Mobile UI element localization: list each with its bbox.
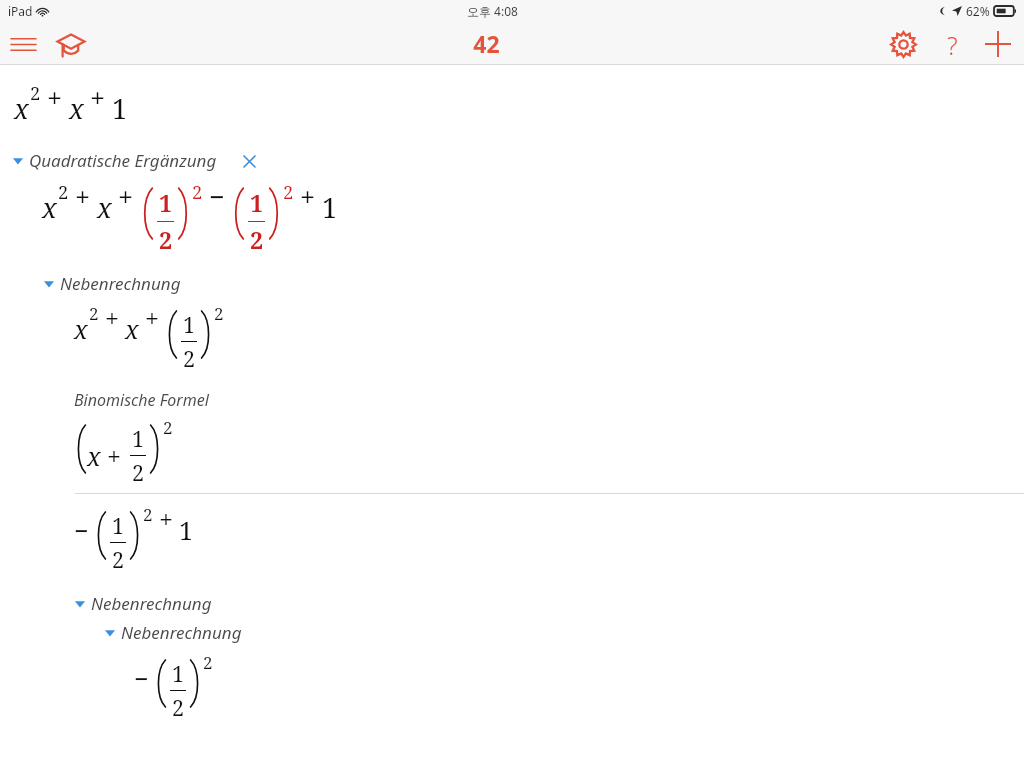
staticText: 62% <box>966 3 990 19</box>
staticText: 2 <box>192 179 203 204</box>
staticText: x <box>125 312 139 346</box>
staticText: 1 <box>183 310 196 339</box>
staticText: 1 <box>250 187 264 219</box>
staticText: + <box>300 178 316 215</box>
button[interactable]: Add <box>982 28 1014 60</box>
staticText: Nebenrechnung <box>91 592 212 615</box>
staticText: 1 <box>322 189 338 226</box>
staticText: 1 <box>172 659 185 688</box>
staticText: 1 <box>179 513 193 547</box>
staticText: 2 <box>159 224 173 256</box>
staticText: x <box>42 189 57 226</box>
staticText: 1 <box>112 90 128 127</box>
staticText: + <box>107 439 121 473</box>
staticText: Nebenrechnung <box>121 621 242 644</box>
staticText: 2 <box>203 651 213 674</box>
staticText: 42 <box>473 28 500 59</box>
staticText: + <box>145 301 159 335</box>
staticText: Nebenrechnung <box>60 272 181 295</box>
button[interactable]: Close step <box>239 151 259 171</box>
staticText: − <box>74 513 89 547</box>
button[interactable]: − <box>74 502 1024 574</box>
staticText: Quadratische Ergänzung <box>29 149 217 172</box>
button[interactable]: x <box>74 301 1024 373</box>
button[interactable]: Nebenrechnung <box>74 592 1024 615</box>
staticText: + <box>90 79 106 116</box>
staticText: 2 <box>143 503 153 526</box>
staticText: 1 <box>112 511 125 540</box>
staticText: 2 <box>58 179 69 204</box>
staticText: 2 <box>132 458 145 487</box>
button[interactable]: Tutorials <box>54 27 88 61</box>
staticText: ? <box>947 28 958 60</box>
button[interactable]: x <box>74 415 1024 487</box>
staticText: 2 <box>163 416 173 439</box>
button[interactable]: x <box>42 178 1024 256</box>
button[interactable]: Help <box>936 28 968 60</box>
staticText: − <box>134 661 149 695</box>
staticText: 2 <box>89 302 99 325</box>
staticText: 1 <box>159 187 173 219</box>
staticText: 2 <box>30 80 41 105</box>
staticText: 2 <box>172 693 185 722</box>
button[interactable]: − <box>134 650 1024 722</box>
staticText: x <box>69 90 84 127</box>
button[interactable]: x <box>14 79 1024 127</box>
staticText: − <box>209 178 225 215</box>
staticText: iPad <box>8 3 33 19</box>
button[interactable]: Menu <box>8 29 38 59</box>
staticText: 2 <box>183 344 196 373</box>
staticText: + <box>105 301 119 335</box>
button[interactable]: Binomische Formel <box>74 389 1024 411</box>
button[interactable]: Nebenrechnung <box>43 272 1024 295</box>
button[interactable]: Quadratische Ergänzung <box>12 149 1024 172</box>
staticText: + <box>118 178 134 215</box>
button[interactable]: Settings <box>886 27 920 61</box>
staticText: + <box>159 502 173 536</box>
button[interactable]: Nebenrechnung <box>104 621 1024 644</box>
staticText: 1 <box>132 424 145 453</box>
staticText: 2 <box>250 224 264 256</box>
staticText: 2 <box>283 179 294 204</box>
staticText: x <box>87 439 101 473</box>
button[interactable]: 42 <box>473 28 500 59</box>
staticText: 2 <box>214 302 224 325</box>
staticText: 2 <box>112 545 125 574</box>
staticText: x <box>14 90 29 127</box>
staticText: + <box>75 178 91 215</box>
staticText: x <box>97 189 112 226</box>
staticText: x <box>74 312 88 346</box>
staticText: + <box>47 79 63 116</box>
staticText: Binomische Formel <box>74 389 209 411</box>
staticText: 오후 4:08 <box>467 3 518 19</box>
